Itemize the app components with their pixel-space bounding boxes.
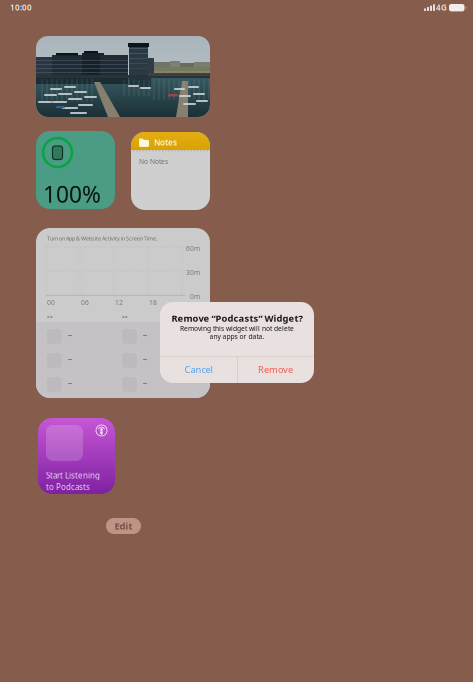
staticText: 06 [81,298,89,307]
staticText: Start Listening [46,470,100,481]
button[interactable]: Cancel [160,356,237,383]
staticText: Cancel [184,363,212,376]
staticText: -- [68,330,72,339]
staticText: 10:00 [10,2,32,13]
staticText: -- [143,354,147,363]
staticText: Notes [154,137,177,148]
staticText: 18 [149,298,157,307]
staticText: No Notes [139,157,168,166]
staticText: 00 [47,298,55,307]
staticText: -- [68,378,72,387]
staticText: Remove “Podcasts” Widget? [171,312,302,324]
staticText: Edit [114,520,132,532]
staticText: 0m [190,292,200,301]
staticText: -- [68,354,72,363]
staticText: -- [143,378,147,387]
staticText: 30m [186,268,200,277]
staticText: 60m [186,244,200,253]
staticText: Remove [258,363,293,376]
staticText: Turn on App & Website Activity in Screen… [47,235,157,242]
staticText: to Podcasts [46,482,90,492]
staticText: -- [47,311,53,322]
staticText: -- [122,311,128,322]
staticText: 12 [115,298,123,307]
button[interactable]: Remove [237,356,314,383]
staticText: 100% [43,179,101,209]
staticText: 4G [436,2,447,13]
staticText: any apps or data. [209,332,264,341]
staticText: -- [143,330,147,339]
button[interactable]: Edit [106,518,141,534]
staticText: Removing this widget will not delete [180,324,294,333]
